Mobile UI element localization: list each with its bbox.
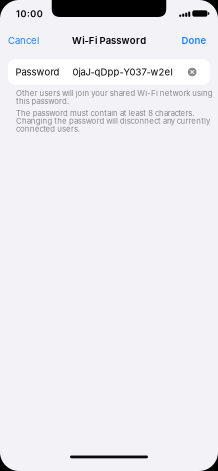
button[interactable]: Cancel	[8, 35, 39, 46]
staticText: Wi-Fi Password	[72, 35, 146, 46]
staticText: connected users.	[16, 124, 80, 134]
button[interactable]: Done	[181, 35, 206, 46]
button[interactable]: Clear text	[188, 68, 196, 76]
staticText: Password	[15, 66, 59, 78]
staticText: 0jaJ-qDpp-Y037-w2el	[72, 66, 172, 78]
staticText: Done	[181, 35, 206, 46]
staticText: Changing the password will disconnect an…	[16, 116, 210, 126]
staticText: Other users will join your shared Wi-Fi …	[16, 88, 213, 98]
staticText: The password must contain at least 8 cha…	[16, 108, 194, 118]
staticText: 10:00	[16, 8, 43, 19]
button[interactable]: Password	[8, 59, 210, 85]
staticText: Cancel	[8, 35, 39, 46]
staticText: this password.	[16, 96, 69, 106]
